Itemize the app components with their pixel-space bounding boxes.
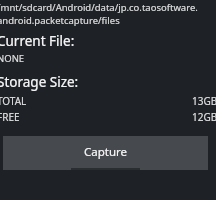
button[interactable]: Capture — [3, 136, 208, 170]
staticText: Current File: — [0, 32, 75, 50]
staticText: /mnt/sdcard/Android/data/jp.co.taosoftwa… — [0, 1, 198, 14]
staticText: Storage Size: — [0, 73, 79, 91]
staticText: android.packetcapture/files — [0, 14, 120, 27]
staticText: Capture — [84, 144, 128, 160]
staticText: NONE — [0, 52, 25, 65]
staticText: 13GB — [192, 94, 216, 107]
staticText: FREE — [0, 110, 20, 123]
staticText: TOTAL — [0, 94, 27, 107]
staticText: 12GB — [192, 110, 216, 123]
